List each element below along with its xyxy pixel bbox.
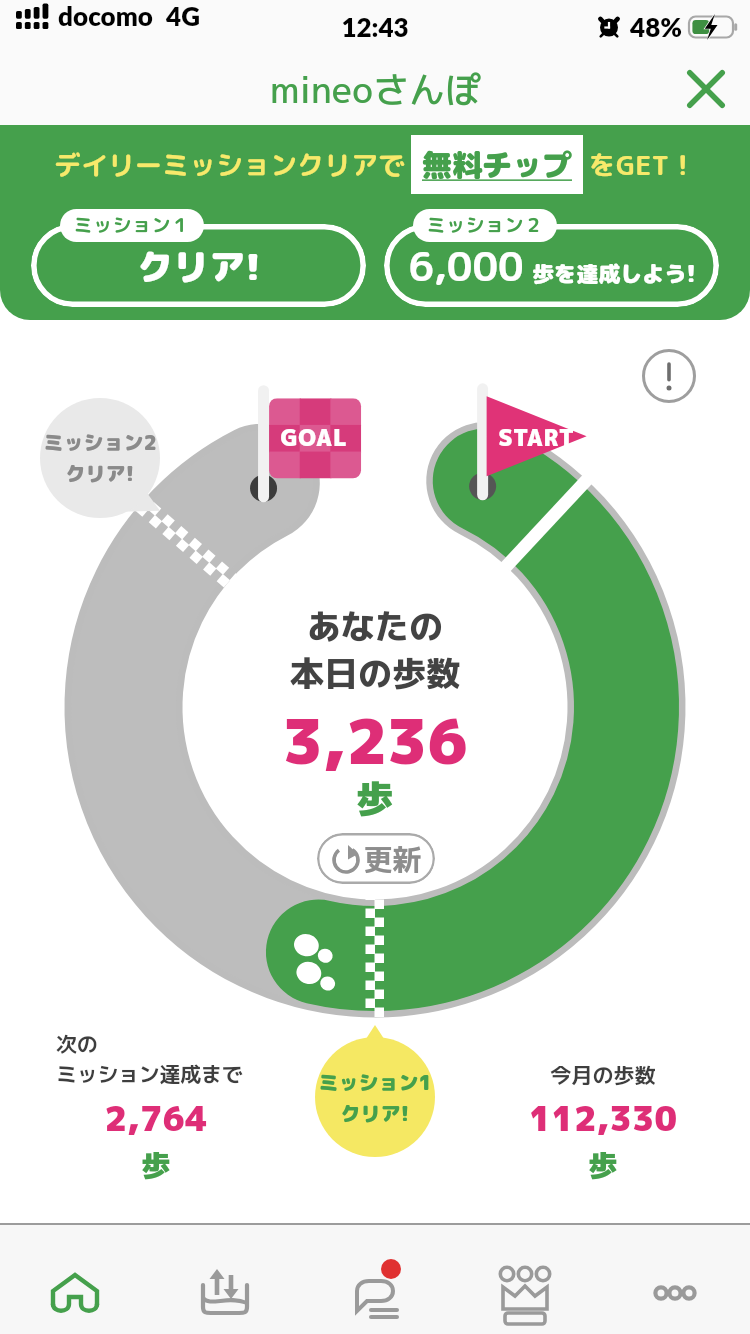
staticText: docomo (58, 0, 153, 31)
staticText: あなたの 本日の歩数 (0, 602, 750, 697)
staticText: START (498, 422, 575, 453)
staticText: デイリーミッションクリアで (54, 146, 405, 184)
staticText: mineoさんぽ (270, 64, 481, 114)
staticText: 48% (630, 11, 682, 42)
button[interactable]: Ranking (450, 1225, 600, 1334)
button[interactable]: Close (678, 61, 734, 117)
staticText: 歩 (507, 1145, 699, 1185)
staticText: クリア! (137, 241, 261, 291)
button[interactable]: Home (0, 1225, 150, 1334)
staticText: 6,000 (408, 238, 524, 294)
staticText: 歩 (0, 772, 750, 824)
staticText: GOAL (280, 422, 348, 453)
staticText: ミッション2 クリア! (22, 428, 178, 488)
staticText: 更新 (363, 839, 422, 879)
staticText: 歩 (63, 1145, 249, 1185)
staticText: 歩を達成しよう! (532, 258, 696, 289)
button[interactable]: 無料チップ (422, 135, 572, 194)
button[interactable]: Info (638, 345, 700, 407)
staticText: 2,764 (63, 1094, 249, 1141)
staticText: 4G (166, 0, 200, 31)
staticText: 無料チップ (422, 144, 572, 186)
staticText: ミッション２ (426, 212, 544, 239)
staticText: ミッション1 クリア! (297, 1068, 453, 1128)
staticText: 112,330 (507, 1094, 699, 1141)
button[interactable]: More (600, 1225, 750, 1334)
staticText: をGET！ (589, 146, 696, 184)
staticText: 3,236 (0, 697, 750, 783)
button[interactable]: 6,000 (384, 224, 719, 307)
button[interactable]: Messages (300, 1225, 450, 1334)
staticText: ミッション１ (73, 212, 191, 239)
staticText: 次の ミッション達成まで (56, 1029, 256, 1089)
button[interactable]: Exchange (150, 1225, 300, 1334)
staticText: 12:43 (341, 11, 409, 42)
button[interactable]: 更新 (317, 833, 435, 884)
button[interactable]: クリア! (31, 224, 366, 307)
staticText: 今月の歩数 (507, 1060, 699, 1089)
